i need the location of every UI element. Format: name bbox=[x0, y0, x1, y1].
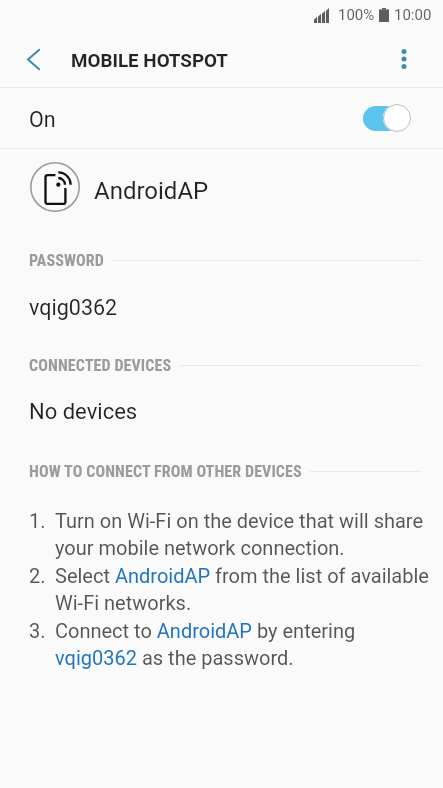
button[interactable]: AndroidAP bbox=[0, 149, 443, 224]
staticText: HOW TO CONNECT FROM OTHER DEVICES bbox=[29, 462, 302, 481]
button[interactable]: Back bbox=[11, 37, 55, 81]
staticText: vqig0362 bbox=[29, 295, 118, 320]
staticText: 10:00 bbox=[394, 6, 432, 24]
staticText: 1. bbox=[29, 509, 55, 532]
staticText: Select AndroidAP from the list of availa… bbox=[55, 564, 429, 615]
staticText: 2. bbox=[29, 564, 55, 587]
staticText: Turn on Wi-Fi on the device that will sh… bbox=[55, 509, 429, 560]
staticText: Connect to AndroidAP by entering vqig036… bbox=[55, 619, 429, 670]
staticText: PASSWORD bbox=[29, 251, 104, 270]
staticText: On bbox=[29, 107, 56, 132]
staticText: No devices bbox=[29, 399, 138, 425]
button[interactable]: More options bbox=[382, 37, 426, 81]
button[interactable]: On bbox=[0, 88, 443, 148]
staticText: AndroidAP bbox=[94, 177, 209, 205]
staticText: MOBILE HOTSPOT bbox=[71, 50, 228, 72]
staticText: CONNECTED DEVICES bbox=[29, 356, 172, 375]
staticText: 3. bbox=[29, 619, 55, 642]
staticText: 100% bbox=[338, 6, 375, 24]
